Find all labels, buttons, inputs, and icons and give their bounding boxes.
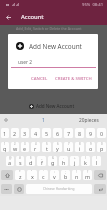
staticText: 9 — [89, 130, 93, 137]
staticText: ! — [76, 170, 77, 174]
staticText: - — [63, 156, 64, 160]
button[interactable]: 1 — [1, 142, 9, 152]
button[interactable]: Add New Account — [0, 101, 107, 111]
staticText: & — [52, 156, 54, 160]
button[interactable]: & — [48, 156, 57, 166]
button[interactable]: 4 — [31, 142, 40, 152]
button[interactable]: 9 — [86, 142, 95, 152]
button[interactable]: Symbols — [1, 184, 12, 194]
staticText: 6 — [56, 130, 60, 137]
button[interactable]: Delete — [94, 170, 106, 180]
staticText: 0 — [101, 142, 103, 146]
button[interactable]: CREATE & SWITCH — [53, 72, 94, 84]
staticText: 5 — [45, 130, 49, 137]
button[interactable]: 3 — [21, 142, 29, 152]
button[interactable]: 9 — [86, 128, 95, 138]
button[interactable]: ) — [92, 156, 101, 166]
staticText: ; — [65, 170, 66, 174]
staticText: ( — [85, 156, 86, 160]
staticText: ? — [87, 170, 89, 174]
staticText: v — [53, 173, 56, 180]
button[interactable]: " — [27, 170, 37, 180]
button[interactable]: Shift — [1, 170, 13, 180]
staticText: * — [19, 170, 21, 174]
staticText: @ — [9, 156, 12, 160]
staticText: u — [67, 145, 71, 152]
staticText: l — [96, 159, 98, 166]
staticText: a — [8, 159, 12, 166]
button[interactable]: 5 — [42, 142, 51, 152]
staticText: ' — [43, 170, 44, 174]
button[interactable]: + — [70, 156, 79, 166]
button[interactable]: 0 — [97, 128, 106, 138]
button[interactable]: 6 — [53, 128, 62, 138]
staticText: 3 — [24, 142, 26, 146]
staticText: : — [54, 170, 55, 174]
staticText: Add New Account — [36, 103, 75, 109]
button[interactable]: 1 — [1, 128, 9, 138]
staticText: $ — [30, 156, 32, 160]
staticText: Add, Edit, Switch or Delete the Account — [16, 26, 82, 31]
button[interactable]: Enter — [94, 184, 106, 194]
button[interactable]: * — [15, 170, 25, 180]
staticText: o — [89, 145, 93, 152]
button[interactable]: ! — [72, 170, 81, 180]
button[interactable]: 4 — [31, 128, 40, 138]
staticText: 4 — [34, 130, 38, 137]
staticText: user 2 — [18, 59, 32, 66]
staticText: z — [19, 173, 22, 180]
staticText: Account — [21, 13, 44, 21]
button[interactable]: CANCEL — [29, 72, 50, 84]
staticText: s — [19, 159, 22, 166]
staticText: 1 — [4, 142, 6, 146]
button[interactable]: Keyboard settings — [2, 116, 10, 124]
button[interactable]: 0 — [97, 142, 106, 152]
staticText: t — [46, 145, 48, 152]
staticText: g — [51, 159, 55, 166]
button[interactable]: Space — [26, 184, 92, 194]
button[interactable]: 5 — [42, 128, 51, 138]
staticText: m — [85, 173, 91, 180]
button[interactable]: ( — [81, 156, 90, 166]
staticText: 8 — [79, 142, 81, 146]
staticText: q — [3, 145, 7, 152]
staticText: d — [29, 159, 33, 166]
button[interactable]: 7 — [64, 142, 73, 152]
staticText: n — [75, 173, 79, 180]
staticText: j — [74, 159, 76, 166]
button[interactable]: $ — [26, 156, 35, 166]
button[interactable]: 2 — [11, 142, 19, 152]
staticText: e — [23, 145, 27, 152]
button[interactable]: 7 — [64, 128, 73, 138]
button[interactable]: 8 — [75, 128, 84, 138]
staticText: w — [13, 145, 18, 152]
button[interactable]: _ — [37, 156, 46, 166]
staticText: 1 — [3, 130, 7, 137]
staticText: 1 — [42, 117, 45, 124]
button[interactable]: ? — [83, 170, 92, 180]
staticText: 0 — [100, 130, 104, 137]
button[interactable]: 6 — [53, 142, 62, 152]
button[interactable]: # — [16, 156, 24, 166]
staticText: 3 — [23, 130, 27, 137]
button[interactable]: : — [50, 170, 59, 180]
button[interactable]: Emoji — [14, 184, 24, 194]
staticText: # — [19, 156, 21, 160]
button[interactable]: Back — [0, 9, 16, 25]
button[interactable]: - — [59, 156, 68, 166]
button[interactable]: 3 — [21, 128, 29, 138]
staticText: f — [41, 159, 43, 166]
staticText: 9 — [90, 142, 92, 146]
staticText: _ — [41, 156, 43, 160]
button[interactable]: 2 — [11, 128, 19, 138]
button[interactable]: 8 — [75, 142, 84, 152]
staticText: 20pieces — [79, 117, 99, 124]
staticText: c — [42, 173, 45, 180]
button[interactable]: ' — [39, 170, 48, 180]
staticText: Chinese Handwriting — [43, 187, 75, 191]
button[interactable]: ; — [61, 170, 70, 180]
staticText: + — [74, 156, 76, 160]
button[interactable]: @ — [6, 156, 14, 166]
staticText: CREATE & SWITCH — [55, 75, 92, 81]
staticText: " — [31, 170, 33, 174]
